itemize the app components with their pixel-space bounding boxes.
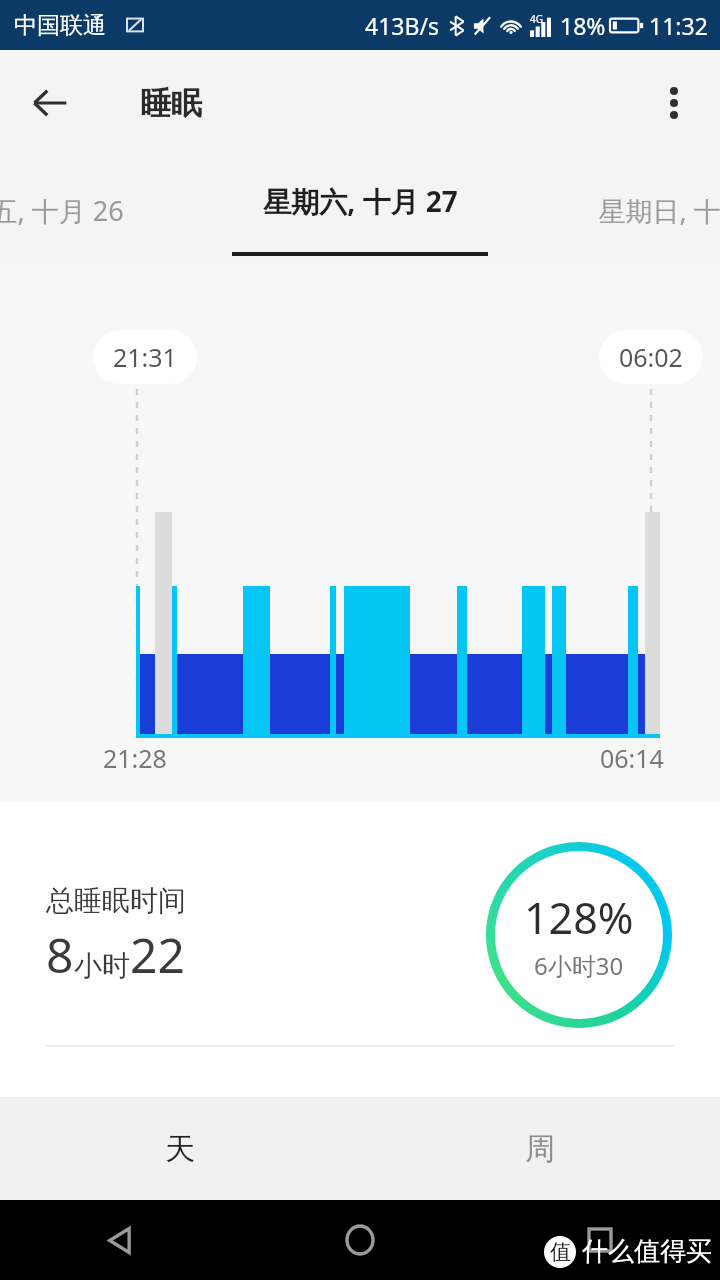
button[interactable]: 星期六, 十月 27	[231, 156, 489, 264]
staticText: 06:02	[619, 340, 683, 374]
staticText: 11:32	[649, 10, 708, 41]
staticText: 21:28	[103, 741, 167, 775]
staticText: 什么值得买	[582, 1235, 712, 1268]
button[interactable]: Back	[0, 1200, 240, 1280]
staticText: 星期五, 十月 26	[0, 192, 124, 229]
staticText: 8	[46, 922, 74, 987]
staticText: 128%	[524, 888, 634, 947]
staticText: 周	[525, 1130, 555, 1168]
staticText: 22	[130, 922, 185, 987]
staticText: 21:31	[113, 340, 177, 374]
staticText: 18%	[560, 10, 606, 41]
staticText: 06:14	[600, 741, 664, 775]
button[interactable]: Home	[240, 1200, 480, 1280]
staticText: 总睡眠时间	[46, 883, 186, 918]
staticText: 星期日, 十月 28	[598, 192, 720, 229]
staticText: 4G	[530, 12, 543, 26]
button[interactable]: 周	[360, 1097, 720, 1200]
staticText: 中国联通	[14, 11, 106, 40]
button[interactable]: Back	[22, 75, 78, 131]
staticText: 413B/s	[365, 10, 439, 41]
staticText: 天	[165, 1130, 195, 1168]
button[interactable]: Recent apps	[480, 1200, 720, 1280]
button[interactable]: More options	[646, 75, 702, 131]
button[interactable]: 星期日, 十月 28	[572, 156, 720, 264]
staticText: 星期六, 十月 27	[263, 182, 458, 220]
button[interactable]: 天	[0, 1097, 360, 1200]
staticText: 小时	[74, 948, 130, 983]
button[interactable]: 星期五, 十月 26	[0, 156, 150, 264]
staticText: 值	[550, 1239, 571, 1265]
staticText: 6小时30	[534, 949, 624, 982]
staticText: 睡眠	[140, 84, 202, 123]
